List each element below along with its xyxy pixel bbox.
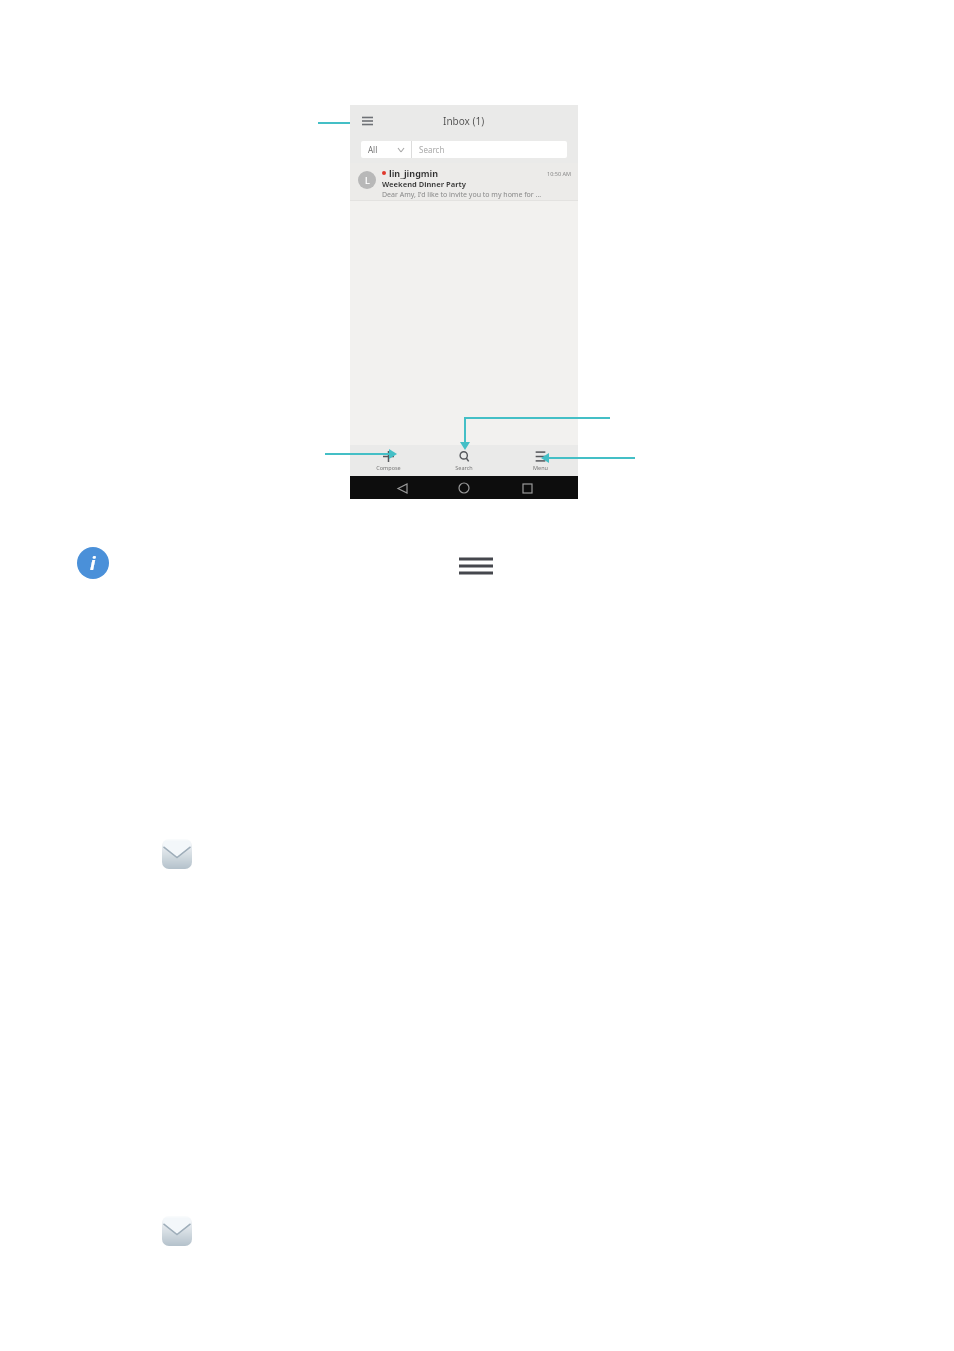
staticText: Compose	[376, 464, 401, 471]
staticText: Menu	[533, 464, 548, 471]
button[interactable]: Navigation menu	[357, 111, 377, 131]
button[interactable]: Back	[391, 477, 413, 499]
staticText: Dear Amy, I'd like to invite you to my h…	[382, 190, 542, 200]
staticText: Weekend Dinner Party	[382, 179, 467, 189]
staticText: Search	[419, 144, 445, 155]
staticText: lin_jingmin	[389, 167, 439, 179]
button[interactable]: Menu	[502, 445, 578, 476]
staticText: Search	[455, 464, 473, 471]
button[interactable]: Home	[453, 477, 475, 499]
button[interactable]: L	[350, 163, 578, 200]
button[interactable]: Search	[426, 445, 502, 476]
button[interactable]: Search	[412, 141, 567, 158]
staticText: Inbox (1)	[443, 114, 485, 128]
staticText: 10:50 AM	[547, 170, 571, 177]
button[interactable]: Recent apps	[516, 477, 538, 499]
staticText: i	[90, 551, 96, 576]
button[interactable]: Compose	[350, 445, 426, 476]
staticText: L	[365, 174, 370, 186]
button[interactable]: All	[361, 141, 411, 158]
staticText: All	[368, 144, 378, 155]
